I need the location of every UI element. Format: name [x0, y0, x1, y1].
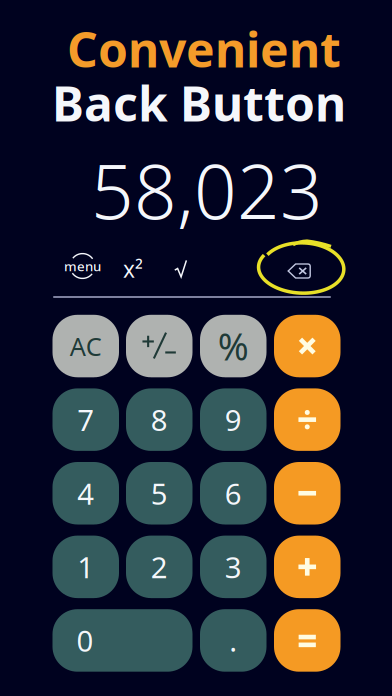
staticText: menu: [64, 257, 101, 275]
button[interactable]: Delete: [284, 259, 314, 283]
button[interactable]: Subtract: [274, 462, 340, 524]
staticText: 1: [77, 547, 94, 586]
staticText: Convenient: [67, 17, 341, 81]
staticText: 8: [151, 400, 168, 439]
staticText: 58,023: [91, 140, 323, 240]
button[interactable]: 5: [126, 462, 192, 524]
staticText: .: [229, 621, 237, 660]
button[interactable]: Divide: [274, 388, 340, 451]
button[interactable]: 4: [52, 462, 119, 524]
button[interactable]: 0: [52, 609, 192, 672]
button[interactable]: AC: [52, 315, 119, 377]
button[interactable]: .: [200, 609, 266, 672]
staticText: %: [218, 321, 249, 371]
button[interactable]: menu: [61, 249, 103, 283]
button[interactable]: 7: [52, 388, 119, 451]
button[interactable]: Toggle sign: [126, 315, 192, 377]
button[interactable]: Add: [274, 536, 340, 598]
button[interactable]: Multiply: [274, 315, 340, 377]
button[interactable]: 2: [126, 536, 192, 598]
button[interactable]: 8: [126, 388, 192, 451]
button[interactable]: 6: [200, 462, 266, 524]
button[interactable]: 1: [52, 536, 119, 598]
staticText: 5: [151, 474, 168, 513]
button[interactable]: 9: [200, 388, 266, 451]
staticText: 6: [225, 474, 242, 513]
staticText: 7: [77, 400, 94, 439]
staticText: AC: [70, 329, 102, 363]
button[interactable]: [163, 252, 199, 286]
button[interactable]: x²: [115, 252, 151, 286]
staticText: 3: [225, 547, 242, 586]
button[interactable]: 3: [200, 536, 266, 598]
button[interactable]: %: [200, 315, 266, 377]
staticText: Back Button: [52, 71, 346, 135]
staticText: 2: [151, 547, 168, 586]
staticText: x²: [123, 254, 143, 284]
staticText: 4: [77, 474, 94, 513]
button[interactable]: Equals: [274, 609, 340, 672]
staticText: 9: [225, 400, 242, 439]
staticText: 0: [76, 621, 93, 660]
